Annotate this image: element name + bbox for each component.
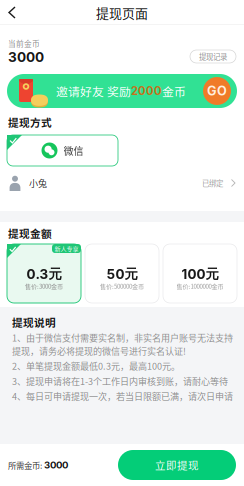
button[interactable]: 微信 <box>0 129 118 166</box>
staticText: 售价:1000000金币 <box>176 282 223 290</box>
staticText: 100元 <box>181 266 218 282</box>
staticText: 1、由于微信支付需要实名制，非实名用户账号无法支持提现，请务必将提现的微信号进行… <box>12 331 233 357</box>
staticText: 3、提现申请将在1-3个工作日内审核到账，请耐心等待 <box>12 374 228 387</box>
staticText: 2、单笔提现金额最低0.3元，最高100元。 <box>12 359 180 372</box>
staticText: GO <box>207 83 227 99</box>
staticText: 售价:500000金币 <box>100 282 144 290</box>
staticText: 售价:3000金币 <box>25 282 63 290</box>
button[interactable]: 邀请好友 奖励 <box>0 70 244 108</box>
staticText: 微信 <box>63 143 83 158</box>
staticText: 邀请好友 奖励 <box>56 82 131 100</box>
staticText: 2000 <box>131 84 162 98</box>
staticText: 小兔 <box>29 176 47 189</box>
staticText: 3000 <box>8 49 44 65</box>
button[interactable]: 50元 <box>85 244 159 303</box>
staticText: 新人专享 <box>54 244 78 253</box>
staticText: 提现方式 <box>8 114 52 130</box>
staticText: 提现说明 <box>12 314 56 330</box>
staticText: 金币 <box>162 82 186 100</box>
staticText: 3000 <box>44 459 68 471</box>
button[interactable]: 100元 <box>163 244 237 303</box>
button[interactable]: 小兔 <box>0 170 244 196</box>
staticText: 提现记录 <box>199 51 227 62</box>
button[interactable]: 立即提现 <box>118 450 236 480</box>
staticText: 4、每日可申请提现一次，若当日限额已满，请次日申请 <box>12 389 233 403</box>
staticText: 提现页面 <box>96 3 148 22</box>
staticText: 50元 <box>106 266 137 282</box>
button[interactable]: 0.3元 <box>7 244 81 303</box>
button[interactable]: 提现记录 <box>190 50 236 63</box>
staticText: 所需金币: <box>8 459 44 471</box>
staticText: 当前金币 <box>8 38 40 49</box>
staticText: 已绑定 <box>202 178 223 188</box>
staticText: 0.3元 <box>26 266 61 282</box>
button[interactable]: 返回 <box>0 0 26 25</box>
staticText: 立即提现 <box>155 457 199 473</box>
staticText: 提现金额 <box>8 225 52 241</box>
